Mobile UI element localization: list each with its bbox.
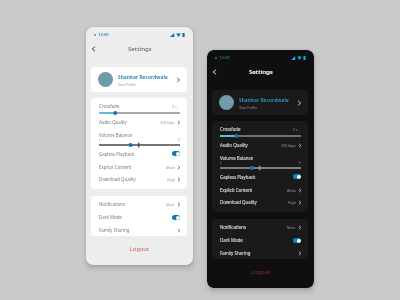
staticText: 5 s xyxy=(172,104,177,109)
staticText: Shankar Recordwala xyxy=(239,97,289,104)
button[interactable]: Toggle xyxy=(172,215,180,220)
staticText: Family Sharing xyxy=(99,227,130,233)
staticText: Explicit Content xyxy=(220,187,253,193)
staticText: View Profile xyxy=(118,82,137,86)
staticText: Family Sharing xyxy=(220,250,251,256)
button[interactable]: Toggle xyxy=(293,174,301,179)
staticText: R xyxy=(299,161,301,165)
button[interactable]: Shankar Recordwala xyxy=(212,90,308,115)
staticText: Notifications xyxy=(220,224,247,230)
staticText: Settings xyxy=(249,67,273,75)
staticText: Audio Quality xyxy=(99,119,127,125)
staticText: 320 kbps xyxy=(160,120,175,125)
staticText: Allow xyxy=(166,165,175,170)
staticText: 12:00 xyxy=(219,55,230,61)
staticText: Logout xyxy=(251,268,270,276)
staticText: Settings xyxy=(128,44,152,52)
staticText: Logout xyxy=(130,245,149,253)
staticText: Gapless Playback xyxy=(220,174,256,180)
button[interactable]: Back xyxy=(208,66,220,78)
staticText: Mute xyxy=(166,202,175,207)
staticText: High xyxy=(288,200,296,205)
staticText: Volume Balance xyxy=(99,132,132,138)
staticText: Crossfade xyxy=(220,126,241,132)
staticText: Dark Mode xyxy=(99,214,122,220)
staticText: 320 kbps xyxy=(281,143,296,148)
staticText: View Profile xyxy=(239,105,258,109)
staticText: Notifications xyxy=(99,201,126,207)
button[interactable]: Logout xyxy=(207,266,314,278)
staticText: Explicit Content xyxy=(99,164,132,170)
staticText: L xyxy=(220,161,222,165)
button[interactable]: Toggle xyxy=(172,151,180,156)
staticText: High xyxy=(167,177,175,182)
staticText: Audio Quality xyxy=(220,142,248,148)
staticText: Volume Balance xyxy=(220,155,253,161)
staticText: Shankar Recordwala xyxy=(118,74,168,81)
staticText: L xyxy=(99,138,101,142)
button[interactable]: Shankar Recordwala xyxy=(91,67,187,92)
button[interactable]: Toggle xyxy=(293,238,301,243)
button[interactable]: Logout xyxy=(86,243,193,255)
staticText: Mute xyxy=(287,225,296,230)
staticText: Dark Mode xyxy=(220,237,243,243)
staticText: Download Quality xyxy=(99,176,136,182)
staticText: Crossfade xyxy=(99,103,120,109)
staticText: Download Quality xyxy=(220,199,257,205)
staticText: 5 s xyxy=(293,127,298,132)
staticText: Allow xyxy=(287,188,296,193)
staticText: 12:00 xyxy=(98,32,109,38)
staticText: R xyxy=(178,138,180,142)
staticText: Gapless Playback xyxy=(99,151,135,157)
button[interactable]: Back xyxy=(87,43,99,55)
